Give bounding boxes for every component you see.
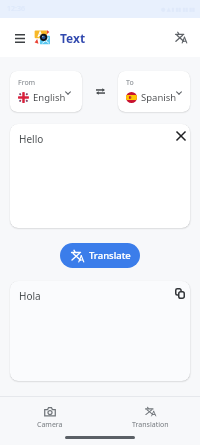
staticText: 12:36 xyxy=(7,4,25,14)
staticText: Translation xyxy=(132,420,169,430)
staticText: To xyxy=(126,78,134,88)
button[interactable]: Translate xyxy=(170,26,192,48)
button[interactable]: Swap languages xyxy=(88,80,112,102)
button[interactable]: To xyxy=(118,71,190,112)
staticText: From xyxy=(18,78,36,88)
staticText: Hola xyxy=(19,289,41,303)
button[interactable]: Menu xyxy=(10,28,30,48)
button[interactable]: Copy translation xyxy=(171,284,189,302)
staticText: ● ▲ ▮ ▮▮ ▮▮ ▮▮ xyxy=(161,6,195,13)
button[interactable]: Translation xyxy=(125,407,175,430)
button[interactable]: From xyxy=(10,71,82,112)
staticText: Text xyxy=(60,30,86,46)
staticText: Camera xyxy=(37,420,63,430)
button[interactable]: Translate xyxy=(60,243,140,268)
staticText: English xyxy=(33,91,66,104)
staticText: Hello xyxy=(19,132,44,146)
button[interactable]: Clear text xyxy=(172,127,190,145)
staticText: Spanish xyxy=(141,91,177,104)
button[interactable]: Camera xyxy=(25,407,75,430)
staticText: Translate xyxy=(89,249,131,262)
